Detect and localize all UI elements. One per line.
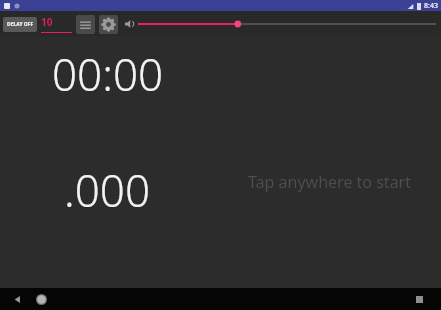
button[interactable]: Home — [30, 288, 52, 310]
button[interactable]: 10 — [41, 15, 72, 33]
staticText: Tap anywhere to start — [248, 171, 411, 193]
button[interactable]: Back — [6, 288, 28, 310]
staticText: DELAY OFF — [7, 21, 34, 28]
button[interactable]: Settings — [99, 15, 118, 34]
button[interactable]: Recent apps — [408, 288, 430, 310]
button[interactable]: Lap list — [76, 15, 95, 34]
button[interactable]: 00:00 — [0, 36, 441, 288]
staticText: 00:00 — [52, 44, 164, 104]
button[interactable]: Volume slider — [138, 14, 436, 34]
staticText: 8:43 — [424, 1, 438, 11]
button[interactable]: DELAY OFF — [3, 17, 37, 32]
staticText: 10 — [41, 15, 53, 29]
staticText: .000 — [64, 160, 151, 220]
button[interactable]: Volume — [122, 14, 138, 34]
